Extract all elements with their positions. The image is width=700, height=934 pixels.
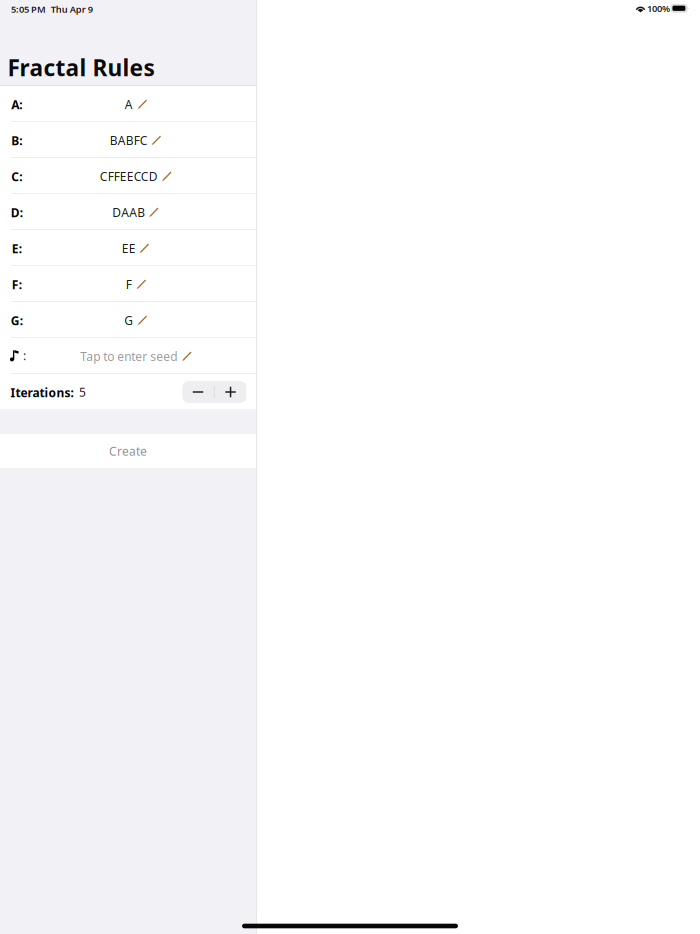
staticText: 5 xyxy=(79,384,86,400)
staticText: Iterations: xyxy=(10,384,73,400)
staticText: D: xyxy=(11,204,23,220)
staticText: BABFC xyxy=(110,132,148,148)
staticText: Thu Apr 9 xyxy=(51,3,93,15)
button[interactable]: G: xyxy=(0,302,256,337)
button[interactable]: E: xyxy=(0,230,256,265)
button[interactable]: Increase iterations xyxy=(215,381,246,403)
button[interactable]: C: xyxy=(0,158,256,193)
staticText: Tap to enter seed xyxy=(80,348,177,364)
staticText: Fractal Rules xyxy=(7,52,154,82)
button[interactable]: B: xyxy=(0,122,256,157)
button[interactable]: D: xyxy=(0,194,256,229)
staticText: G xyxy=(124,312,133,328)
staticText: A xyxy=(125,96,133,112)
staticText: CFFEECCD xyxy=(100,168,158,184)
staticText: F xyxy=(126,276,132,292)
staticText: G: xyxy=(11,312,23,328)
staticText: E: xyxy=(12,240,22,256)
staticText: B: xyxy=(11,132,22,148)
staticText: : xyxy=(23,347,26,363)
staticText: EE xyxy=(122,240,136,256)
button[interactable]: Create xyxy=(0,434,256,468)
button[interactable]: A: xyxy=(0,86,256,121)
staticText: A: xyxy=(11,96,22,112)
staticText: F: xyxy=(12,276,22,292)
button[interactable]: : xyxy=(0,338,256,373)
staticText: 5:05 PM xyxy=(11,3,46,15)
staticText: 100% xyxy=(647,2,670,15)
staticText: C: xyxy=(11,168,22,184)
button[interactable]: Decrease iterations xyxy=(182,381,214,403)
button[interactable]: F: xyxy=(0,266,256,301)
staticText: DAAB xyxy=(112,204,145,220)
staticText: Create xyxy=(109,443,147,459)
